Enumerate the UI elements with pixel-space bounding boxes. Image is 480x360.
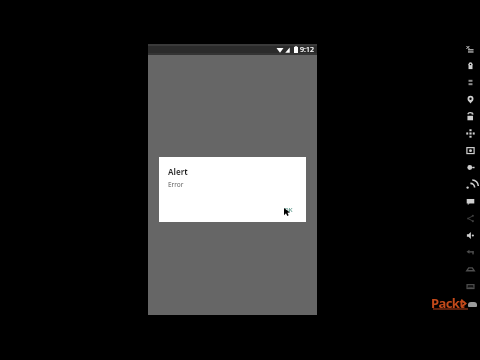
button[interactable]: Screenshot — [461, 142, 480, 159]
staticText: 9:12 — [300, 45, 314, 55]
button[interactable]: Cellular — [461, 176, 480, 193]
button[interactable]: Location — [461, 91, 480, 108]
button[interactable]: OK — [280, 204, 297, 216]
button[interactable]: Share — [461, 210, 480, 227]
button[interactable]: Record — [461, 159, 480, 176]
staticText: OK — [284, 206, 293, 214]
button[interactable]: Volume — [461, 74, 480, 91]
staticText: Alert — [168, 166, 188, 177]
button[interactable]: Power — [461, 57, 480, 74]
button[interactable]: Recents — [461, 278, 480, 295]
staticText: Error — [168, 180, 184, 189]
button[interactable]: Rotate — [461, 108, 480, 125]
button[interactable]: Home — [461, 261, 480, 278]
button[interactable]: Back — [461, 244, 480, 261]
staticText: Packt — [431, 294, 465, 312]
button[interactable]: Messages — [461, 193, 480, 210]
button[interactable]: Volume control — [461, 227, 480, 244]
button[interactable]: Close — [461, 40, 480, 57]
button[interactable]: Resize — [461, 125, 480, 142]
